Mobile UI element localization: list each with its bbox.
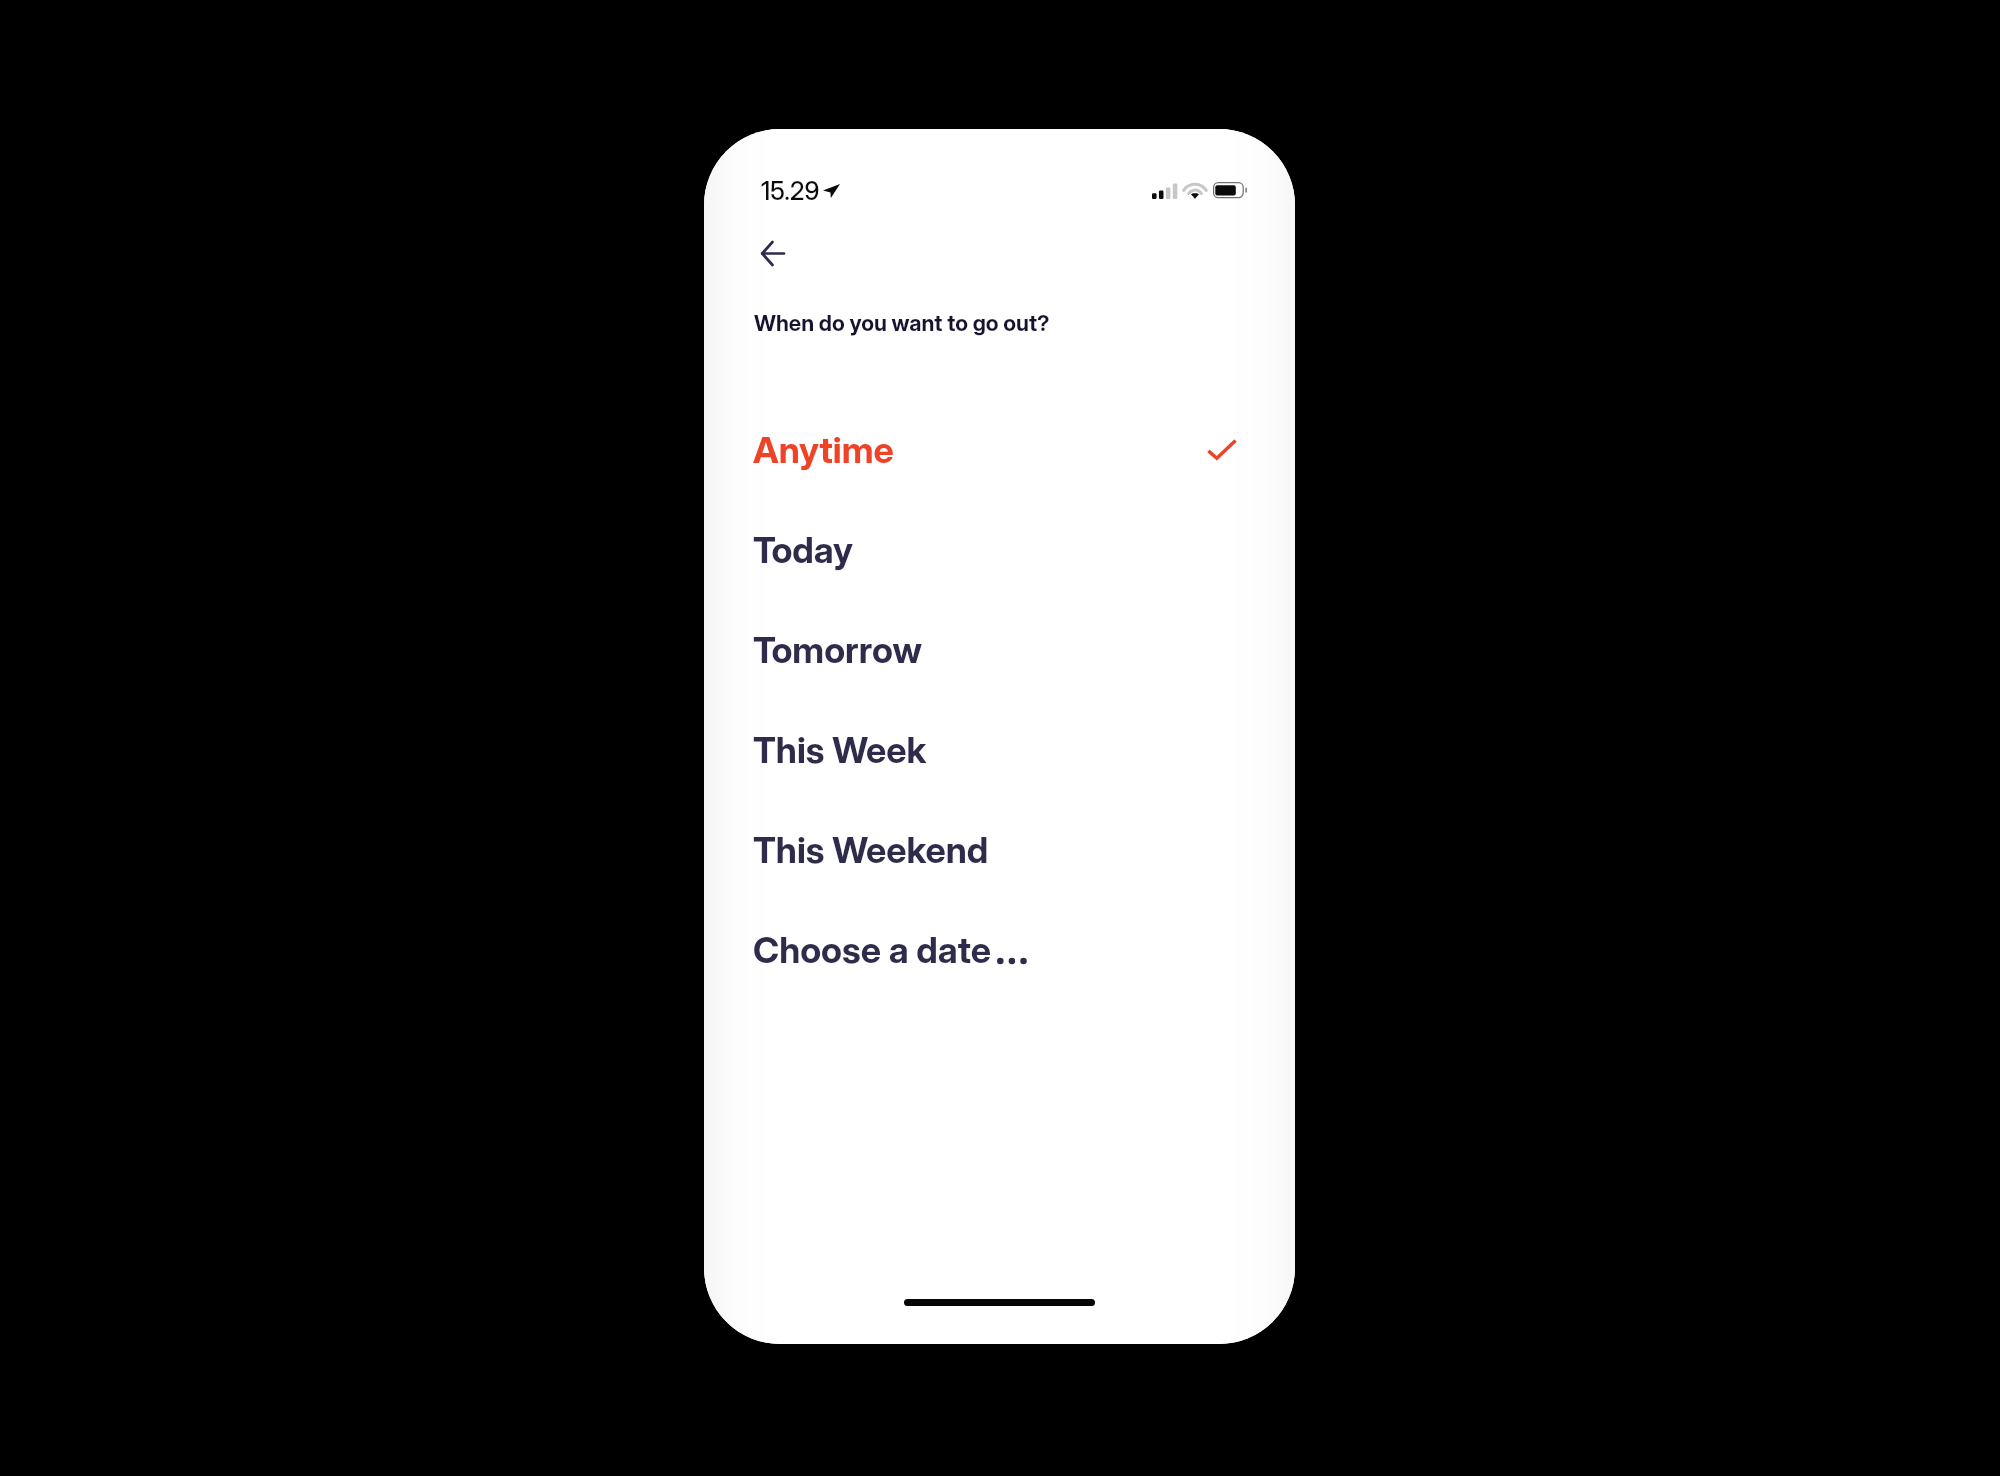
button[interactable]: This Week: [704, 713, 1295, 787]
button[interactable]: Back: [748, 229, 796, 277]
button[interactable]: Anytime: [704, 413, 1295, 487]
staticText: Anytime: [753, 428, 894, 472]
staticText: Choose a date: [753, 928, 991, 972]
staticText: When do you want to go out?: [754, 310, 1050, 337]
staticText: This Weekend: [753, 828, 989, 872]
button[interactable]: Tomorrow: [704, 613, 1295, 687]
staticText: 15.29: [761, 176, 820, 206]
staticText: This Week: [753, 728, 927, 772]
staticText: Today: [753, 528, 853, 572]
staticText: Tomorrow: [753, 628, 922, 672]
button[interactable]: Choose a date: [704, 913, 1295, 987]
button[interactable]: This Weekend: [704, 813, 1295, 887]
button[interactable]: Today: [704, 513, 1295, 587]
